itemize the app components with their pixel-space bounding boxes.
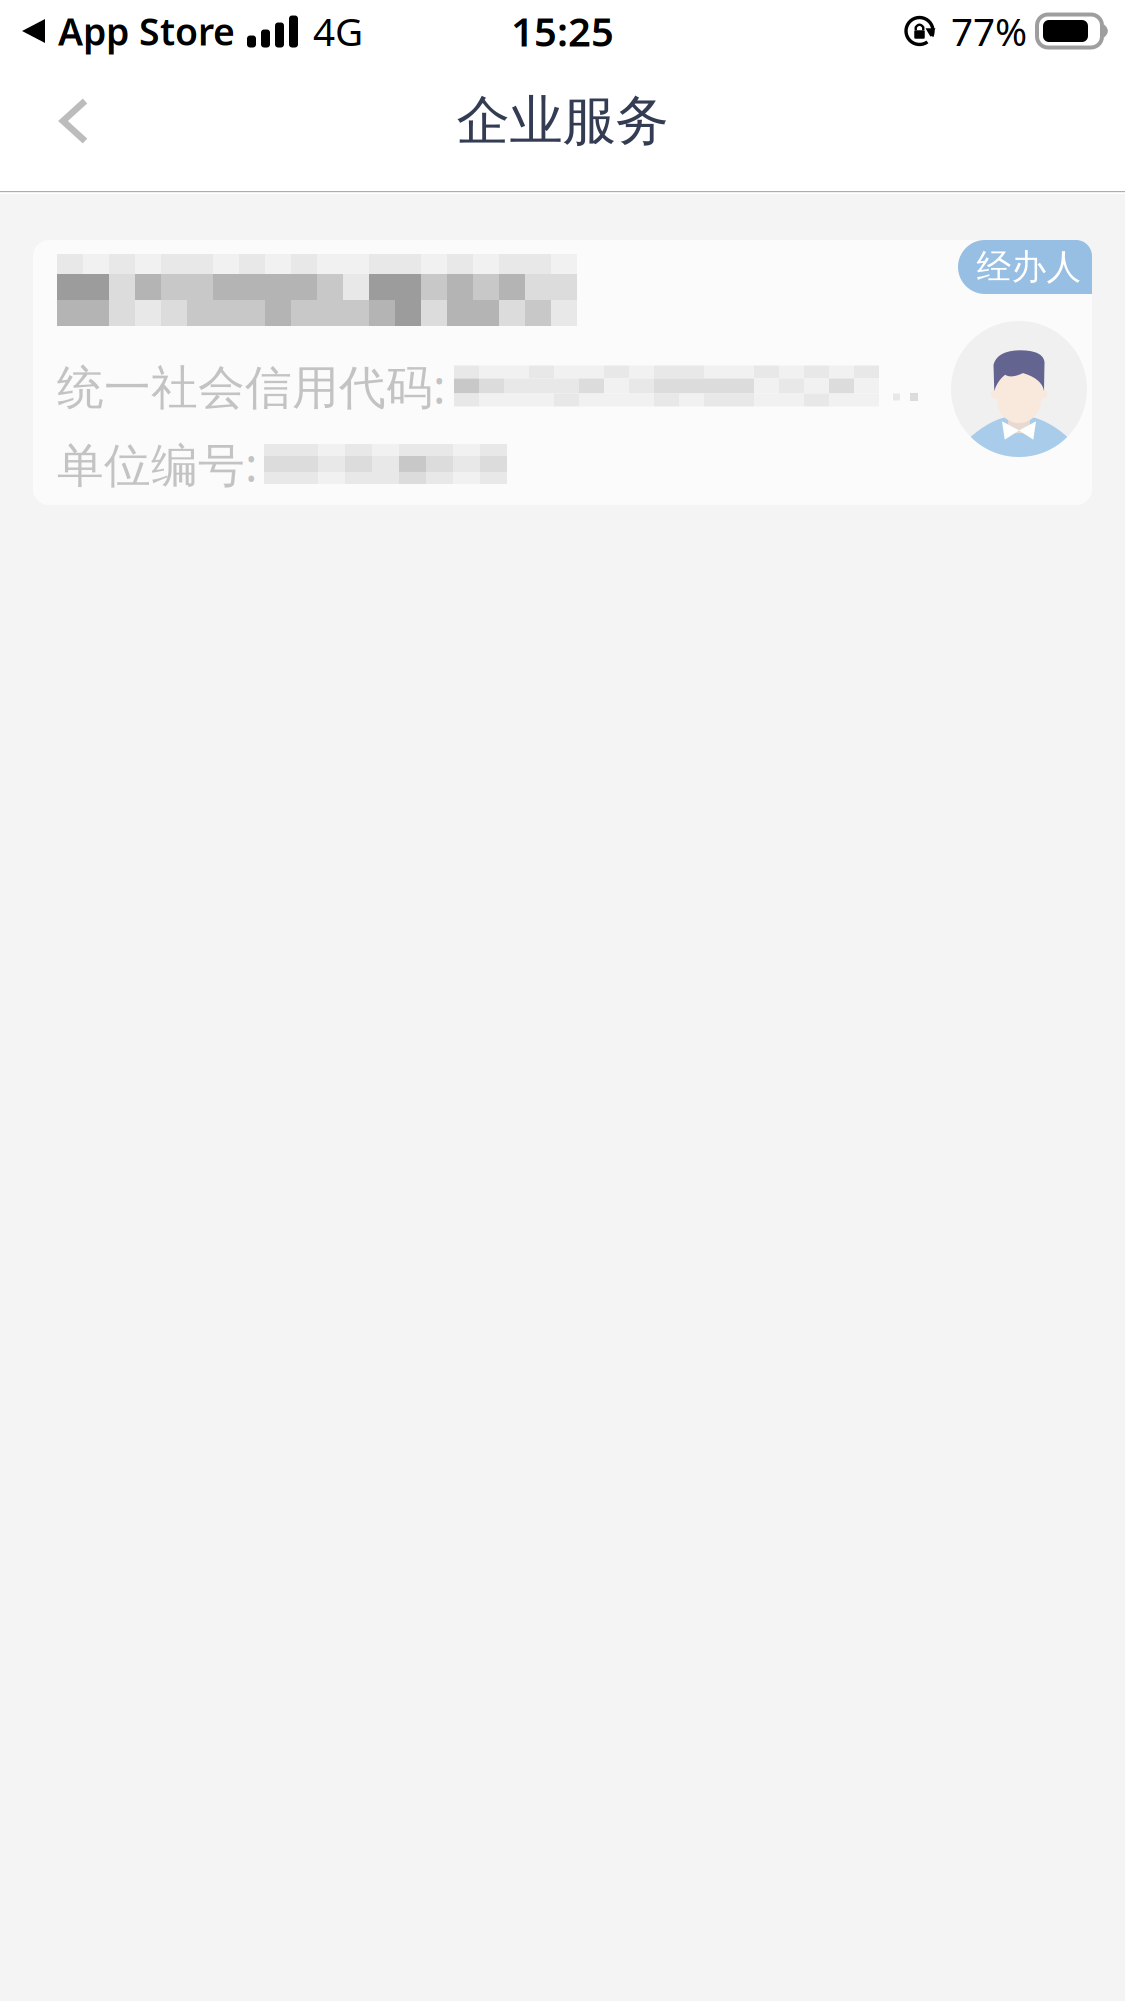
staticText: 企业服务 — [456, 88, 668, 154]
staticText: 15:25 — [511, 4, 614, 57]
staticText: 统一社会信用代码: — [57, 355, 446, 417]
staticText: App Store — [58, 6, 235, 56]
staticText: 77% — [951, 5, 1027, 57]
staticText: 单位编号: — [57, 433, 258, 495]
staticText: 经办人 — [976, 246, 1081, 288]
button[interactable]: 返回 — [28, 69, 120, 173]
staticText: 4G — [313, 5, 363, 57]
button[interactable]: 统一社会信用代码: — [0, 194, 1125, 505]
